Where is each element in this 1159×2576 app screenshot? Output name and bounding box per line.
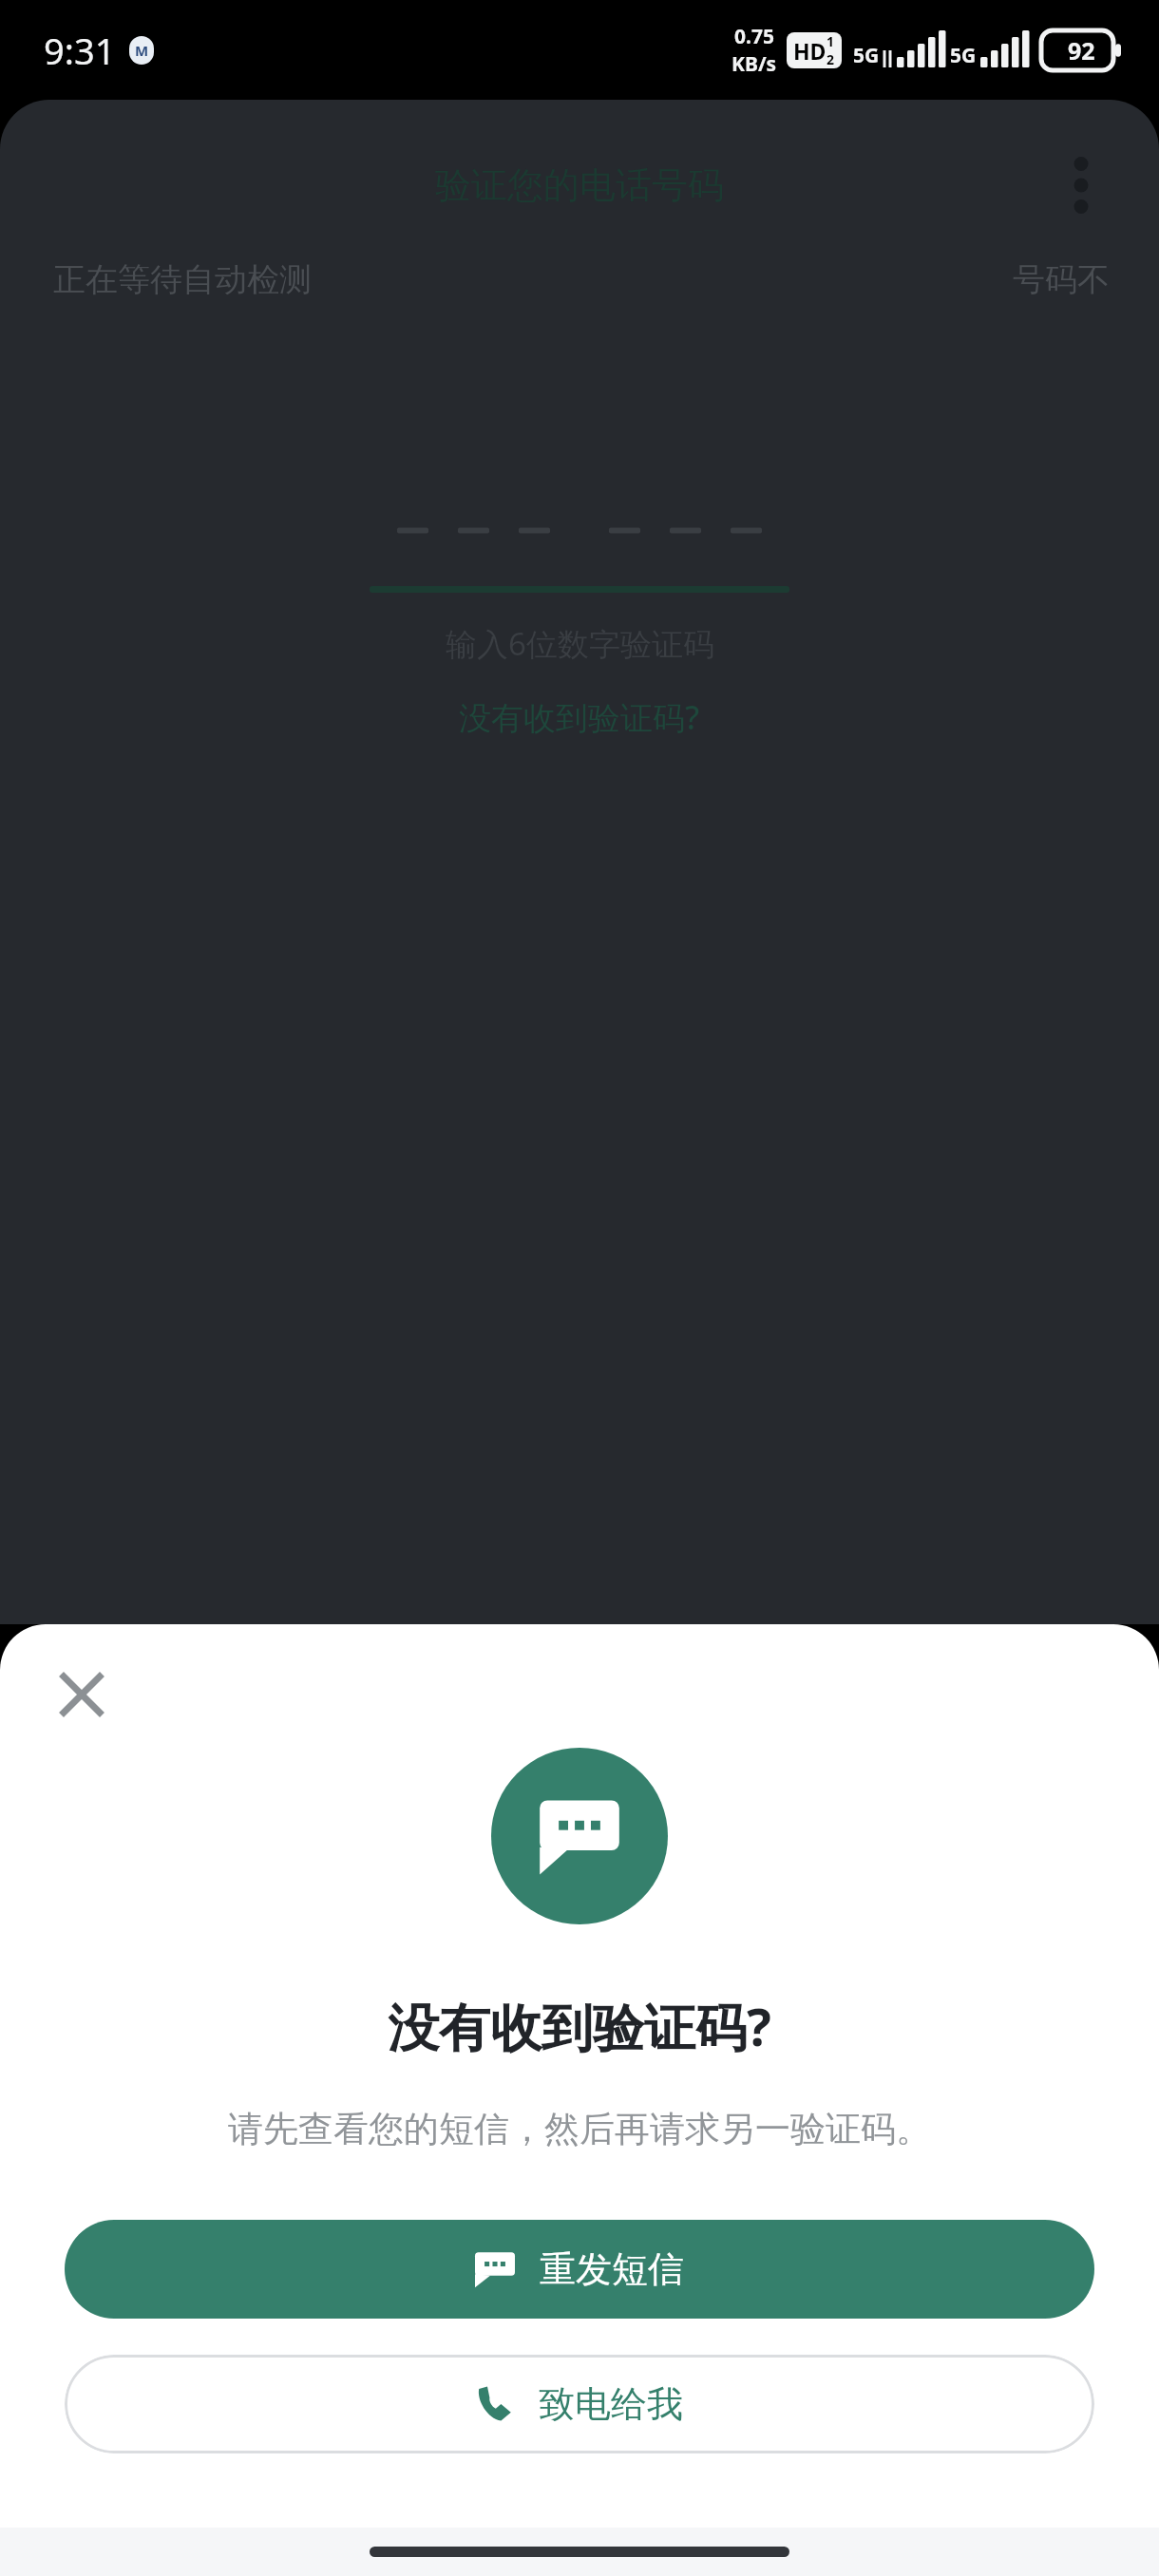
- button[interactable]: 重发短信: [65, 2220, 1094, 2319]
- staticText: 输入6位数字验证码: [446, 622, 714, 665]
- staticText: 2: [826, 50, 835, 68]
- staticText: KB/s: [731, 50, 777, 78]
- staticText: 5G: [950, 42, 977, 69]
- staticText: 验证您的电话号码: [435, 162, 724, 208]
- staticText: 9:31: [44, 26, 116, 75]
- button[interactable]: 致电给我: [65, 2355, 1094, 2453]
- staticText: 致电给我: [539, 2381, 683, 2427]
- button[interactable]: Close: [40, 1653, 123, 1736]
- staticText: 0.75: [734, 23, 774, 50]
- staticText: 1: [826, 32, 835, 50]
- staticText: 92: [1068, 34, 1095, 66]
- staticText: 请先查看您的短信，然后再请求另一验证码。: [228, 2107, 931, 2151]
- staticText: 没有收到验证码?: [459, 695, 700, 739]
- button[interactable]: More options: [1035, 140, 1127, 231]
- staticText: HD: [793, 36, 826, 66]
- button[interactable]: 没有收到验证码?: [459, 695, 700, 739]
- staticText: 重发短信: [540, 2246, 684, 2292]
- staticText: 5G: [853, 42, 880, 69]
- staticText: 号码不: [1013, 259, 1110, 300]
- staticText: 没有收到验证码?: [388, 1991, 771, 2061]
- button[interactable]: [370, 480, 789, 594]
- button[interactable]: 验证您的电话号码: [435, 162, 724, 208]
- staticText: M: [135, 41, 149, 60]
- staticText: 正在等待自动检测: [53, 259, 312, 300]
